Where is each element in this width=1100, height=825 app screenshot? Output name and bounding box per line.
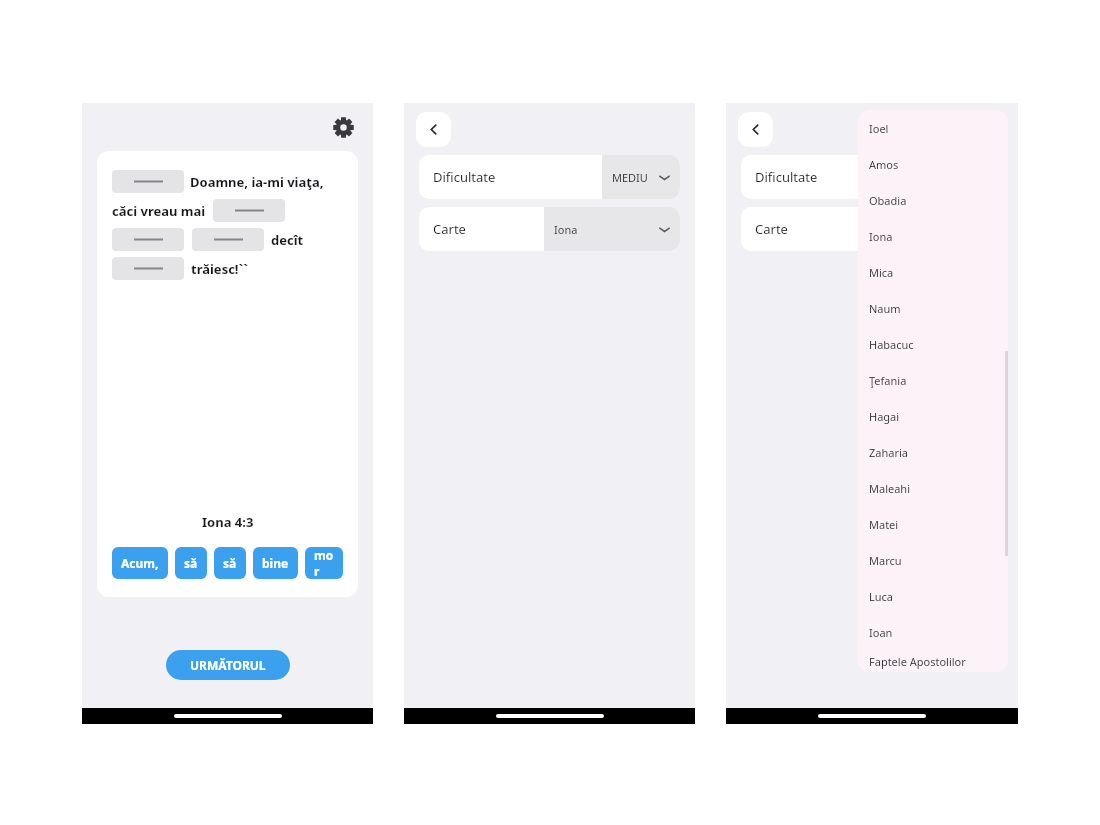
staticText: Amos xyxy=(869,157,899,172)
button[interactable]: Blank xyxy=(112,170,184,193)
staticText: Iona xyxy=(869,229,893,244)
button[interactable]: Hagai xyxy=(858,398,1008,434)
button[interactable]: Habacuc xyxy=(858,326,1008,362)
button[interactable]: Marcu xyxy=(858,542,1008,578)
staticText: URMĂTORUL xyxy=(190,657,266,673)
staticText: Carte xyxy=(755,220,788,238)
button[interactable]: Luca xyxy=(858,578,1008,614)
staticText: Mica xyxy=(869,265,894,280)
staticText: Matei xyxy=(869,517,899,532)
staticText: Naum xyxy=(869,301,901,316)
button[interactable]: Blank xyxy=(112,228,184,251)
staticText: căci vreau mai xyxy=(112,202,206,220)
staticText: MEDIU xyxy=(612,170,648,185)
staticText: Dificultate xyxy=(755,168,818,186)
staticText: Luca xyxy=(869,589,894,604)
button[interactable]: Mica xyxy=(858,254,1008,290)
button[interactable]: Blank xyxy=(213,199,285,222)
staticText: Marcu xyxy=(869,553,902,568)
staticText: trăiesc!`` xyxy=(191,260,249,278)
button[interactable]: Obadia xyxy=(858,182,1008,218)
button[interactable]: Naum xyxy=(858,290,1008,326)
button[interactable]: să xyxy=(214,547,246,579)
button[interactable]: Blank xyxy=(112,257,184,280)
button[interactable]: Ioel xyxy=(858,110,1008,146)
button[interactable]: Matei xyxy=(858,506,1008,542)
button[interactable]: Ţefania xyxy=(858,362,1008,398)
staticText: Faptele Apostolilor xyxy=(869,654,966,669)
staticText: Acum, xyxy=(121,555,159,571)
staticText: să xyxy=(184,555,198,571)
button[interactable]: mor xyxy=(305,547,343,579)
staticText: Ioan xyxy=(869,625,893,640)
staticText: Iona 4:3 xyxy=(202,513,254,531)
button[interactable]: bine xyxy=(253,547,298,579)
button[interactable]: Dificultate xyxy=(741,155,1003,199)
button[interactable]: Dificultate xyxy=(419,155,680,199)
button[interactable]: Faptele Apostolilor xyxy=(858,650,1008,672)
button[interactable]: Carte xyxy=(741,207,1003,251)
button[interactable]: Carte xyxy=(419,207,680,251)
button[interactable]: Back xyxy=(738,112,773,147)
button[interactable]: Acum, xyxy=(112,547,168,579)
staticText: Dificultate xyxy=(433,168,496,186)
button[interactable]: Back xyxy=(416,112,451,147)
staticText: Iona xyxy=(554,222,578,237)
button[interactable]: Amos xyxy=(858,146,1008,182)
staticText: Carte xyxy=(433,220,466,238)
button[interactable]: să xyxy=(175,547,207,579)
button[interactable]: URMĂTORUL xyxy=(166,650,290,680)
button[interactable]: Settings xyxy=(327,111,359,143)
staticText: Ţefania xyxy=(869,373,907,388)
staticText: Obadia xyxy=(869,193,907,208)
staticText: Doamne, ia-mi viaţa, xyxy=(190,173,324,191)
button[interactable]: Maleahi xyxy=(858,470,1008,506)
staticText: Ioel xyxy=(869,121,889,136)
button[interactable]: Iona xyxy=(858,218,1008,254)
staticText: Zaharia xyxy=(869,445,908,460)
button[interactable]: Ioan xyxy=(858,614,1008,650)
staticText: Hagai xyxy=(869,409,900,424)
button[interactable]: Zaharia xyxy=(858,434,1008,470)
staticText: Maleahi xyxy=(869,481,910,496)
staticText: bine xyxy=(262,555,289,571)
staticText: decît xyxy=(271,231,304,249)
staticText: mor xyxy=(314,547,334,579)
button[interactable]: Blank xyxy=(192,228,264,251)
staticText: să xyxy=(223,555,237,571)
staticText: Habacuc xyxy=(869,337,914,352)
